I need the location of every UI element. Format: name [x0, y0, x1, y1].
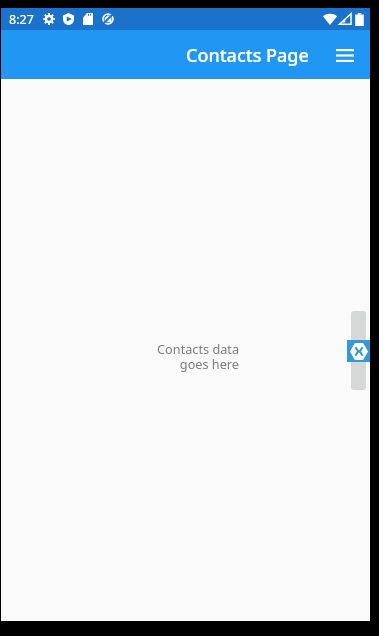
button[interactable]: Menu	[333, 43, 357, 67]
staticText: Contacts data goes here	[157, 340, 239, 373]
button[interactable]: Xamarin hot reload	[347, 340, 370, 362]
staticText: 8:27	[9, 11, 34, 28]
staticText: Contacts Page	[186, 43, 309, 68]
